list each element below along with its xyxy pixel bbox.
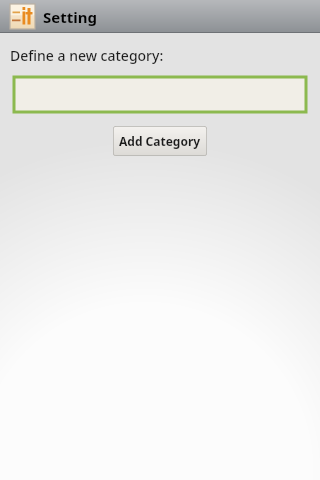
staticText: Define a new category: — [10, 46, 164, 65]
button[interactable] — [14, 77, 306, 112]
button[interactable]: Add Category — [113, 126, 207, 156]
staticText: Add Category — [119, 133, 201, 149]
staticText: Setting — [43, 7, 97, 27]
